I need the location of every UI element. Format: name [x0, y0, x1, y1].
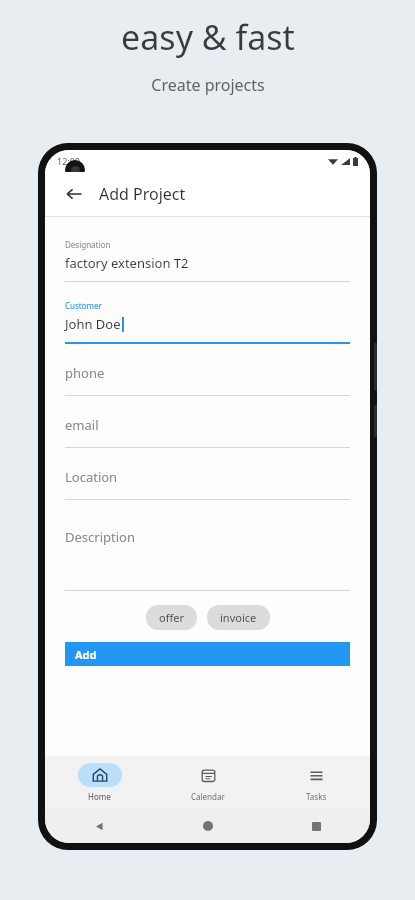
- button[interactable]: Home: [154, 809, 262, 843]
- button[interactable]: Home: [45, 763, 154, 802]
- staticText: phone: [65, 364, 105, 382]
- staticText: Create projects: [151, 74, 265, 96]
- button[interactable]: phone: [65, 364, 350, 396]
- button[interactable]: Customer: [65, 300, 350, 344]
- staticText: invoice: [220, 610, 257, 625]
- staticText: Calendar: [191, 791, 225, 802]
- button[interactable]: Back: [45, 809, 154, 843]
- button[interactable]: Recents: [262, 809, 370, 843]
- staticText: Description: [65, 528, 135, 546]
- staticText: easy & fast: [121, 14, 295, 60]
- staticText: Home: [88, 791, 111, 802]
- button[interactable]: Tasks: [262, 763, 370, 802]
- button[interactable]: offer: [146, 605, 197, 630]
- button[interactable]: Designation: [65, 239, 350, 282]
- staticText: Customer: [65, 300, 102, 311]
- staticText: offer: [159, 610, 184, 625]
- button[interactable]: invoice: [207, 605, 270, 630]
- staticText: Add Project: [99, 183, 186, 205]
- staticText: Tasks: [306, 791, 327, 802]
- staticText: Location: [65, 468, 118, 486]
- button[interactable]: Description: [65, 528, 350, 591]
- staticText: Designation: [65, 239, 111, 250]
- button[interactable]: Location: [65, 468, 350, 500]
- button[interactable]: Add: [65, 642, 350, 666]
- button[interactable]: email: [65, 416, 350, 448]
- staticText: email: [65, 416, 99, 434]
- button[interactable]: Back: [59, 179, 89, 209]
- staticText: John Doe: [65, 315, 121, 333]
- staticText: Add: [75, 647, 97, 662]
- button[interactable]: Calendar: [154, 763, 262, 802]
- staticText: factory extension T2: [65, 254, 189, 272]
- staticText: 12:00: [57, 155, 81, 167]
